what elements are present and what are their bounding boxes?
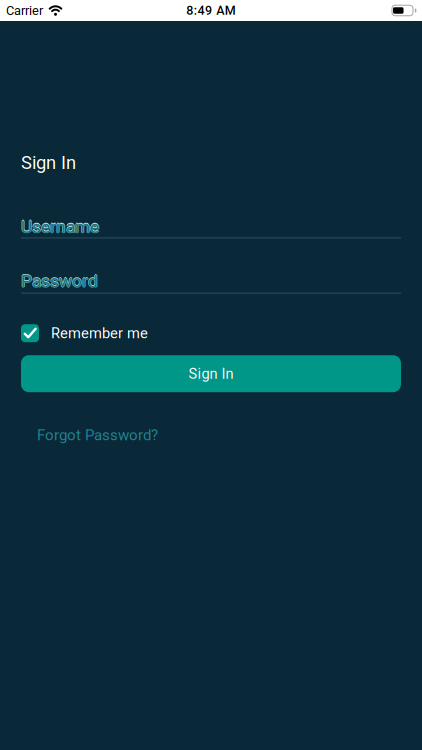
button[interactable]: Sign In (21, 355, 401, 392)
staticText: Password (22, 271, 99, 291)
staticText: Password (21, 270, 98, 290)
staticText: Username (22, 217, 100, 237)
staticText: Password (20, 271, 97, 291)
staticText: Username (20, 217, 98, 237)
button[interactable]: Forgot Password? (37, 426, 158, 444)
staticText: Sign In (188, 365, 233, 382)
staticText: Forgot Password? (37, 426, 158, 444)
staticText: Username (21, 216, 99, 236)
staticText: Password (21, 272, 98, 292)
staticText: Remember me (51, 325, 148, 342)
staticText: Carrier (6, 3, 43, 18)
staticText: Username (21, 217, 99, 237)
staticText: Password (21, 271, 98, 291)
textField[interactable]: Username (21, 217, 401, 239)
staticText: Sign In (21, 152, 76, 174)
staticText: 8:49 AM (186, 3, 236, 18)
textField[interactable]: Password (21, 271, 401, 293)
staticText: Username (21, 217, 99, 238)
button[interactable]: Remember me (21, 324, 148, 342)
